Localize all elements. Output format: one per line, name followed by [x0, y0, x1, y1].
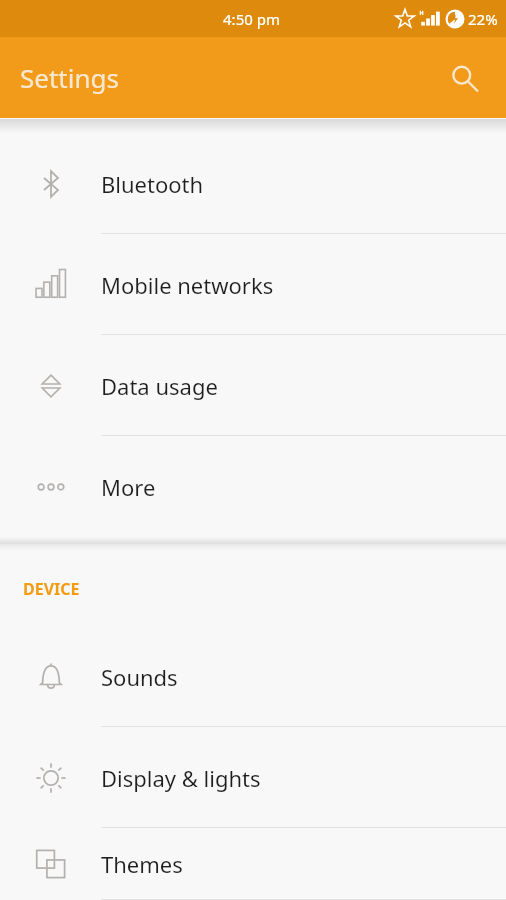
- staticText: Display & lights: [101, 763, 261, 793]
- staticText: DEVICE: [23, 578, 80, 600]
- button[interactable]: More: [0, 436, 506, 537]
- staticText: Settings: [20, 60, 119, 95]
- staticText: Mobile networks: [101, 270, 274, 300]
- button[interactable]: Bluetooth: [0, 133, 506, 234]
- button[interactable]: Sounds: [0, 626, 506, 727]
- staticText: 22%: [468, 9, 498, 29]
- staticText: Bluetooth: [101, 169, 204, 199]
- button[interactable]: Data usage: [0, 335, 506, 436]
- button[interactable]: Mobile networks: [0, 234, 506, 335]
- staticText: 4:50 pm: [223, 9, 280, 29]
- button[interactable]: Themes: [0, 828, 506, 900]
- staticText: Data usage: [101, 371, 218, 401]
- button[interactable]: Display & lights: [0, 727, 506, 828]
- staticText: Sounds: [101, 662, 178, 692]
- staticText: More: [101, 472, 156, 502]
- button[interactable]: Search: [442, 56, 486, 100]
- staticText: Themes: [101, 849, 183, 879]
